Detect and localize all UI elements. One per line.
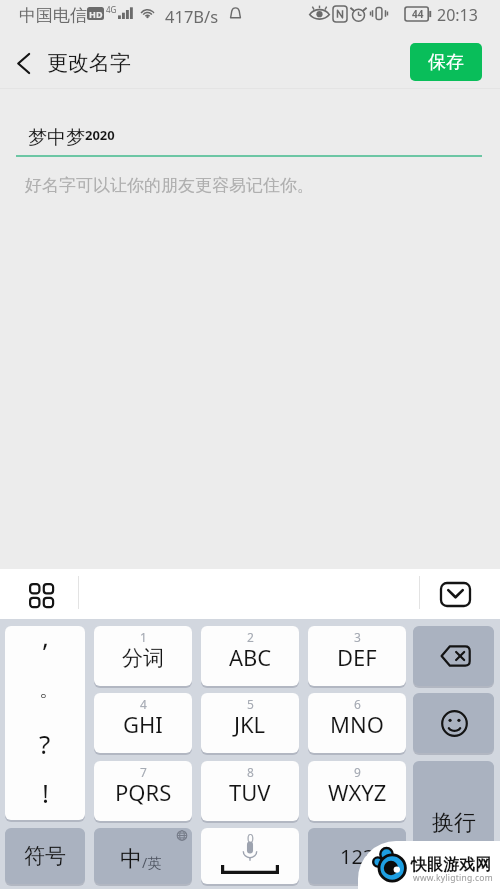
staticText: 分词 [122, 645, 164, 671]
staticText: DEF [337, 642, 377, 672]
button[interactable]: 5 [201, 693, 299, 753]
staticText: 保存 [428, 51, 464, 74]
button[interactable]: 表情 [413, 693, 494, 753]
staticText: ! [42, 775, 49, 810]
button[interactable]: 保存 [410, 43, 482, 81]
staticText: 123 [340, 843, 375, 870]
staticText: , [42, 626, 49, 654]
button[interactable]: 语音输入 [201, 828, 299, 884]
staticText: 快眼游戏网 [411, 855, 491, 875]
button[interactable]: 9 [308, 761, 406, 821]
staticText: 5 [247, 696, 254, 712]
staticText: 好名字可以让你的朋友更容易记住你。 [25, 175, 314, 196]
other: 退格 [413, 626, 494, 686]
staticText: 9 [354, 764, 361, 780]
staticText: 4 [140, 696, 147, 712]
button[interactable]: 换行 [413, 761, 494, 885]
staticText: 44 [412, 7, 424, 21]
button[interactable]: 键盘菜单 [18, 576, 62, 612]
staticText: 1 [140, 629, 147, 645]
staticText: 7 [140, 764, 147, 780]
staticText: 。 [39, 676, 60, 702]
button[interactable]: 收起键盘 [435, 577, 476, 611]
staticText: HD [89, 8, 103, 20]
staticText: MNO [330, 709, 384, 739]
staticText: 梦中梦 [28, 126, 85, 150]
button[interactable]: 退格 [413, 626, 494, 686]
button[interactable]: 3 [308, 626, 406, 686]
staticText: www.kyligting.com [413, 872, 493, 884]
button[interactable]: , [5, 626, 85, 820]
staticText: ABC [229, 642, 272, 672]
button[interactable]: 返回 [2, 40, 46, 86]
staticText: 符号 [24, 843, 66, 869]
staticText: 6 [354, 696, 361, 712]
staticText: 更改名字 [47, 50, 131, 76]
staticText: 0 [247, 830, 254, 846]
button[interactable]: 6 [308, 693, 406, 753]
button[interactable]: 7 [94, 761, 192, 821]
staticText: 417B/s [165, 5, 219, 27]
staticText: TUV [229, 777, 271, 807]
staticText: 3 [354, 629, 361, 645]
button[interactable]: 中 [94, 828, 192, 884]
staticText: GHI [123, 709, 163, 739]
staticText: 20:13 [437, 4, 478, 26]
staticText: WXYZ [328, 777, 387, 807]
button[interactable]: 符号 [5, 828, 85, 884]
staticText: 2 [247, 629, 254, 645]
staticText: JKL [234, 709, 266, 739]
button[interactable]: 2 [201, 626, 299, 686]
staticText: 4G [106, 4, 117, 15]
staticText: 中 [120, 845, 142, 873]
button[interactable]: 8 [201, 761, 299, 821]
staticText: 8 [247, 764, 254, 780]
button[interactable]: 1 [94, 626, 192, 686]
staticText: 换行 [432, 809, 476, 837]
staticText: ? [39, 726, 51, 761]
button[interactable]: 123 [308, 828, 406, 884]
staticText: 2020 [85, 126, 115, 144]
staticText: 中国电信 [19, 5, 87, 26]
staticText: PQRS [115, 777, 172, 807]
button[interactable]: 4 [94, 693, 192, 753]
staticText: /英 [142, 853, 162, 872]
other: 表情 [413, 693, 494, 753]
other: 语音输入 [201, 828, 299, 884]
